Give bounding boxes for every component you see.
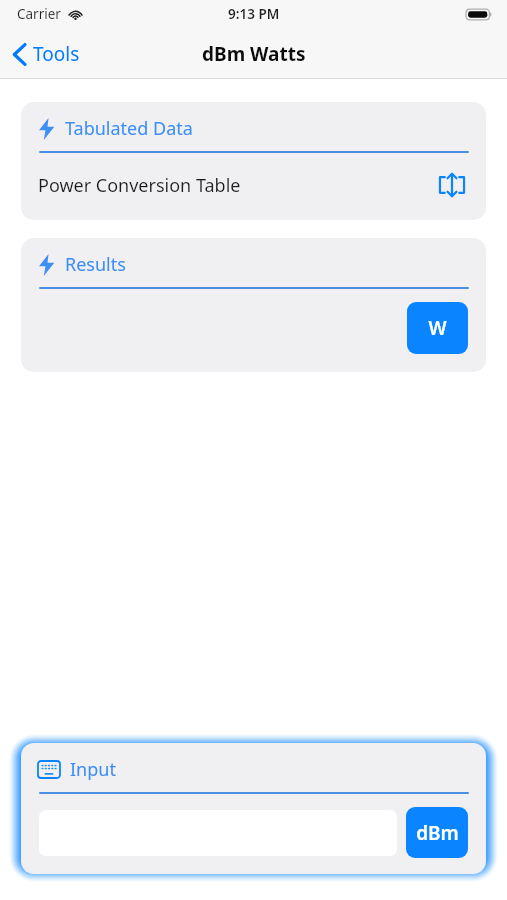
staticText: Results: [65, 252, 126, 277]
staticText: Input: [70, 757, 116, 782]
staticText: Carrier: [17, 5, 61, 23]
staticText: 9:13 PM: [228, 5, 280, 23]
button[interactable]: Tools: [0, 35, 90, 73]
staticText: Tabulated Data: [65, 116, 193, 141]
button[interactable]: W: [407, 302, 468, 354]
staticText: dBm Watts: [202, 41, 306, 67]
button[interactable]: Expand table: [435, 168, 469, 202]
staticText: W: [428, 315, 447, 341]
staticText: Tools: [33, 41, 80, 67]
button[interactable]: Power Conversion Table: [21, 153, 486, 220]
staticText: Power Conversion Table: [38, 173, 241, 198]
button[interactable]: dBm: [406, 807, 468, 858]
other: Keyboard input: [38, 761, 60, 778]
other: Section: [38, 254, 55, 276]
staticText: dBm: [416, 820, 459, 846]
other: Section: [38, 118, 55, 140]
